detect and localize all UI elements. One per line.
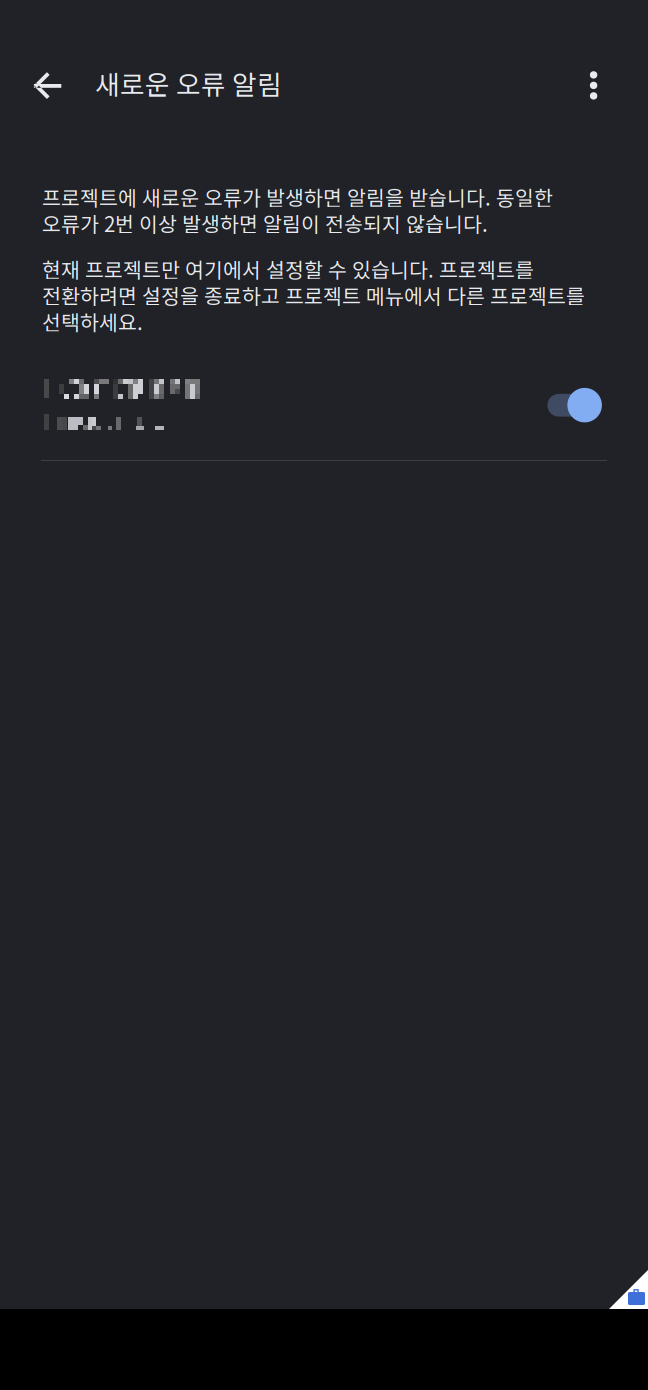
button[interactable]	[0, 362, 648, 450]
button[interactable]: Back	[20, 58, 76, 114]
staticText: 새로운 오류 알림	[95, 64, 282, 102]
staticText: 선택하세요.	[42, 306, 143, 336]
staticText: 전환하려면 설정을 종료하고 프로젝트 메뉴에서 다른 프로젝트를	[42, 280, 585, 310]
button[interactable]: More options	[566, 57, 622, 113]
staticText: 현재 프로젝트만 여기에서 설정할 수 있습니다. 프로젝트를	[42, 254, 534, 284]
button[interactable]: 새로운 오류 알림	[95, 55, 295, 111]
staticText: 오류가 2번 이상 발생하면 알림이 전송되지 않습니다.	[42, 208, 488, 238]
staticText: 프로젝트에 새로운 오류가 발생하면 알림을 받습니다. 동일한	[42, 182, 553, 212]
